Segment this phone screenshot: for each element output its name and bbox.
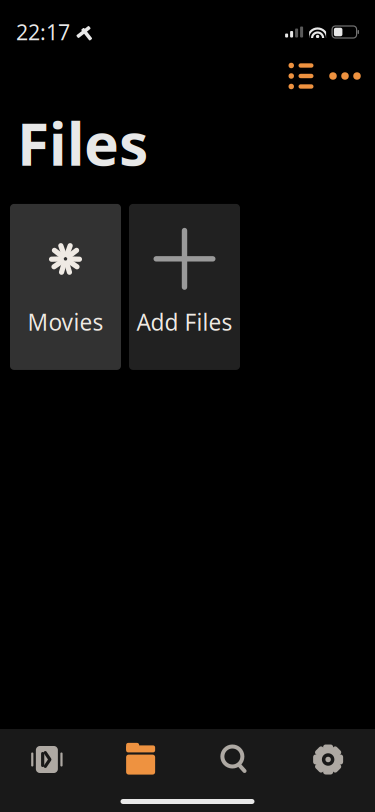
button[interactable]: More options [323, 54, 367, 98]
staticText: Files [17, 104, 148, 182]
staticText: Add Files [136, 307, 232, 337]
button[interactable]: Files [94, 735, 188, 784]
button[interactable]: Add Files [129, 204, 240, 370]
button[interactable]: Search [187, 735, 281, 784]
button[interactable]: List view [279, 54, 323, 98]
button[interactable]: Movies [10, 204, 121, 370]
staticText: Movies [27, 307, 103, 337]
staticText: 22:17 [16, 18, 70, 46]
button[interactable]: Videos [0, 735, 94, 784]
button[interactable]: Settings [281, 735, 375, 784]
